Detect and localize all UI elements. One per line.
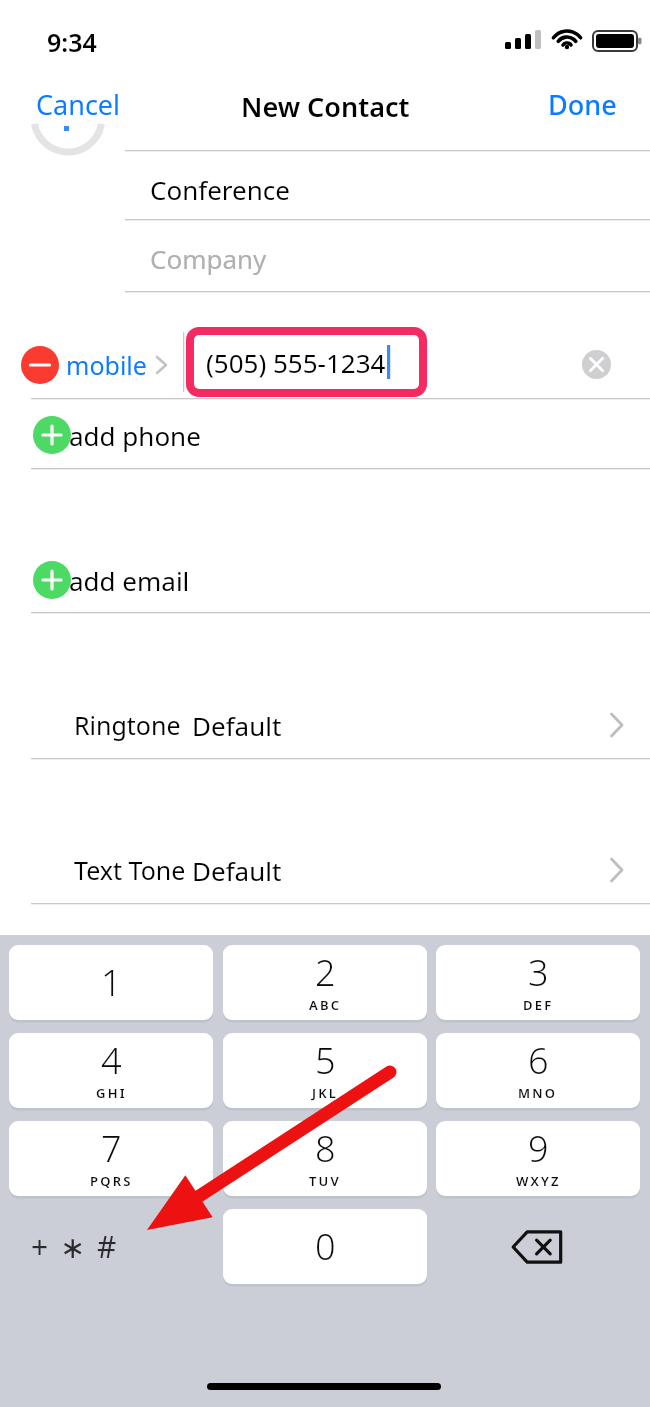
- staticText: 4: [101, 1036, 122, 1085]
- staticText: Conference: [150, 172, 290, 207]
- button[interactable]: 7: [9, 1121, 213, 1196]
- button[interactable]: 5: [223, 1033, 427, 1108]
- staticText: (505) 555-1234: [206, 345, 386, 380]
- staticText: 5: [315, 1036, 336, 1085]
- staticText: MNO: [518, 1084, 558, 1102]
- staticText: Done: [548, 86, 617, 123]
- staticText: 9:34: [47, 25, 97, 59]
- button[interactable]: add email: [14, 555, 650, 605]
- button[interactable]: 6: [436, 1033, 640, 1108]
- staticText: 2: [315, 948, 336, 997]
- button[interactable]: Cancel: [22, 86, 135, 123]
- staticText: GHI: [96, 1084, 127, 1102]
- staticText: PQRS: [90, 1172, 133, 1190]
- staticText: 6: [528, 1036, 549, 1085]
- button[interactable]: add phone: [14, 410, 650, 460]
- staticText: WXYZ: [516, 1172, 561, 1190]
- button[interactable]: 3: [436, 945, 640, 1020]
- staticText: JKL: [312, 1084, 339, 1102]
- button[interactable]: 8: [223, 1121, 427, 1196]
- button[interactable]: Clear text: [582, 350, 611, 379]
- button[interactable]: Ringtone: [0, 700, 650, 750]
- staticText: add phone: [69, 418, 201, 453]
- button[interactable]: mobile: [66, 348, 174, 382]
- button[interactable]: Backspace: [436, 1209, 640, 1284]
- staticText: Company: [150, 241, 267, 276]
- button[interactable]: Text Tone: [0, 845, 650, 895]
- button[interactable]: Done: [534, 86, 631, 123]
- staticText: 7: [101, 1124, 122, 1173]
- staticText: DEF: [523, 996, 554, 1014]
- button[interactable]: (505) 555-1234: [190, 331, 423, 393]
- button[interactable]: Remove mobile phone: [14, 340, 66, 390]
- staticText: add email: [69, 563, 190, 598]
- staticText: + ∗ #: [31, 1226, 119, 1267]
- staticText: 9: [528, 1124, 549, 1173]
- staticText: 1: [101, 958, 122, 1007]
- staticText: ABC: [309, 996, 342, 1014]
- staticText: Cancel: [36, 86, 121, 123]
- staticText: TUV: [309, 1172, 341, 1190]
- button[interactable]: 4: [9, 1033, 213, 1108]
- button[interactable]: 0: [223, 1209, 427, 1284]
- staticText: Text Tone: [74, 853, 186, 887]
- staticText: Default: [192, 853, 282, 888]
- staticText: 0: [315, 1222, 336, 1271]
- staticText: New Contact: [241, 88, 410, 125]
- button[interactable]: 2: [223, 945, 427, 1020]
- button[interactable]: 9: [436, 1121, 640, 1196]
- staticText: mobile: [66, 348, 147, 382]
- staticText: 3: [528, 948, 549, 997]
- staticText: Default: [192, 708, 282, 743]
- staticText: Ringtone: [74, 708, 181, 742]
- button[interactable]: 1: [9, 945, 213, 1020]
- staticText: 8: [315, 1124, 336, 1173]
- button[interactable]: + ∗ #: [9, 1209, 213, 1284]
